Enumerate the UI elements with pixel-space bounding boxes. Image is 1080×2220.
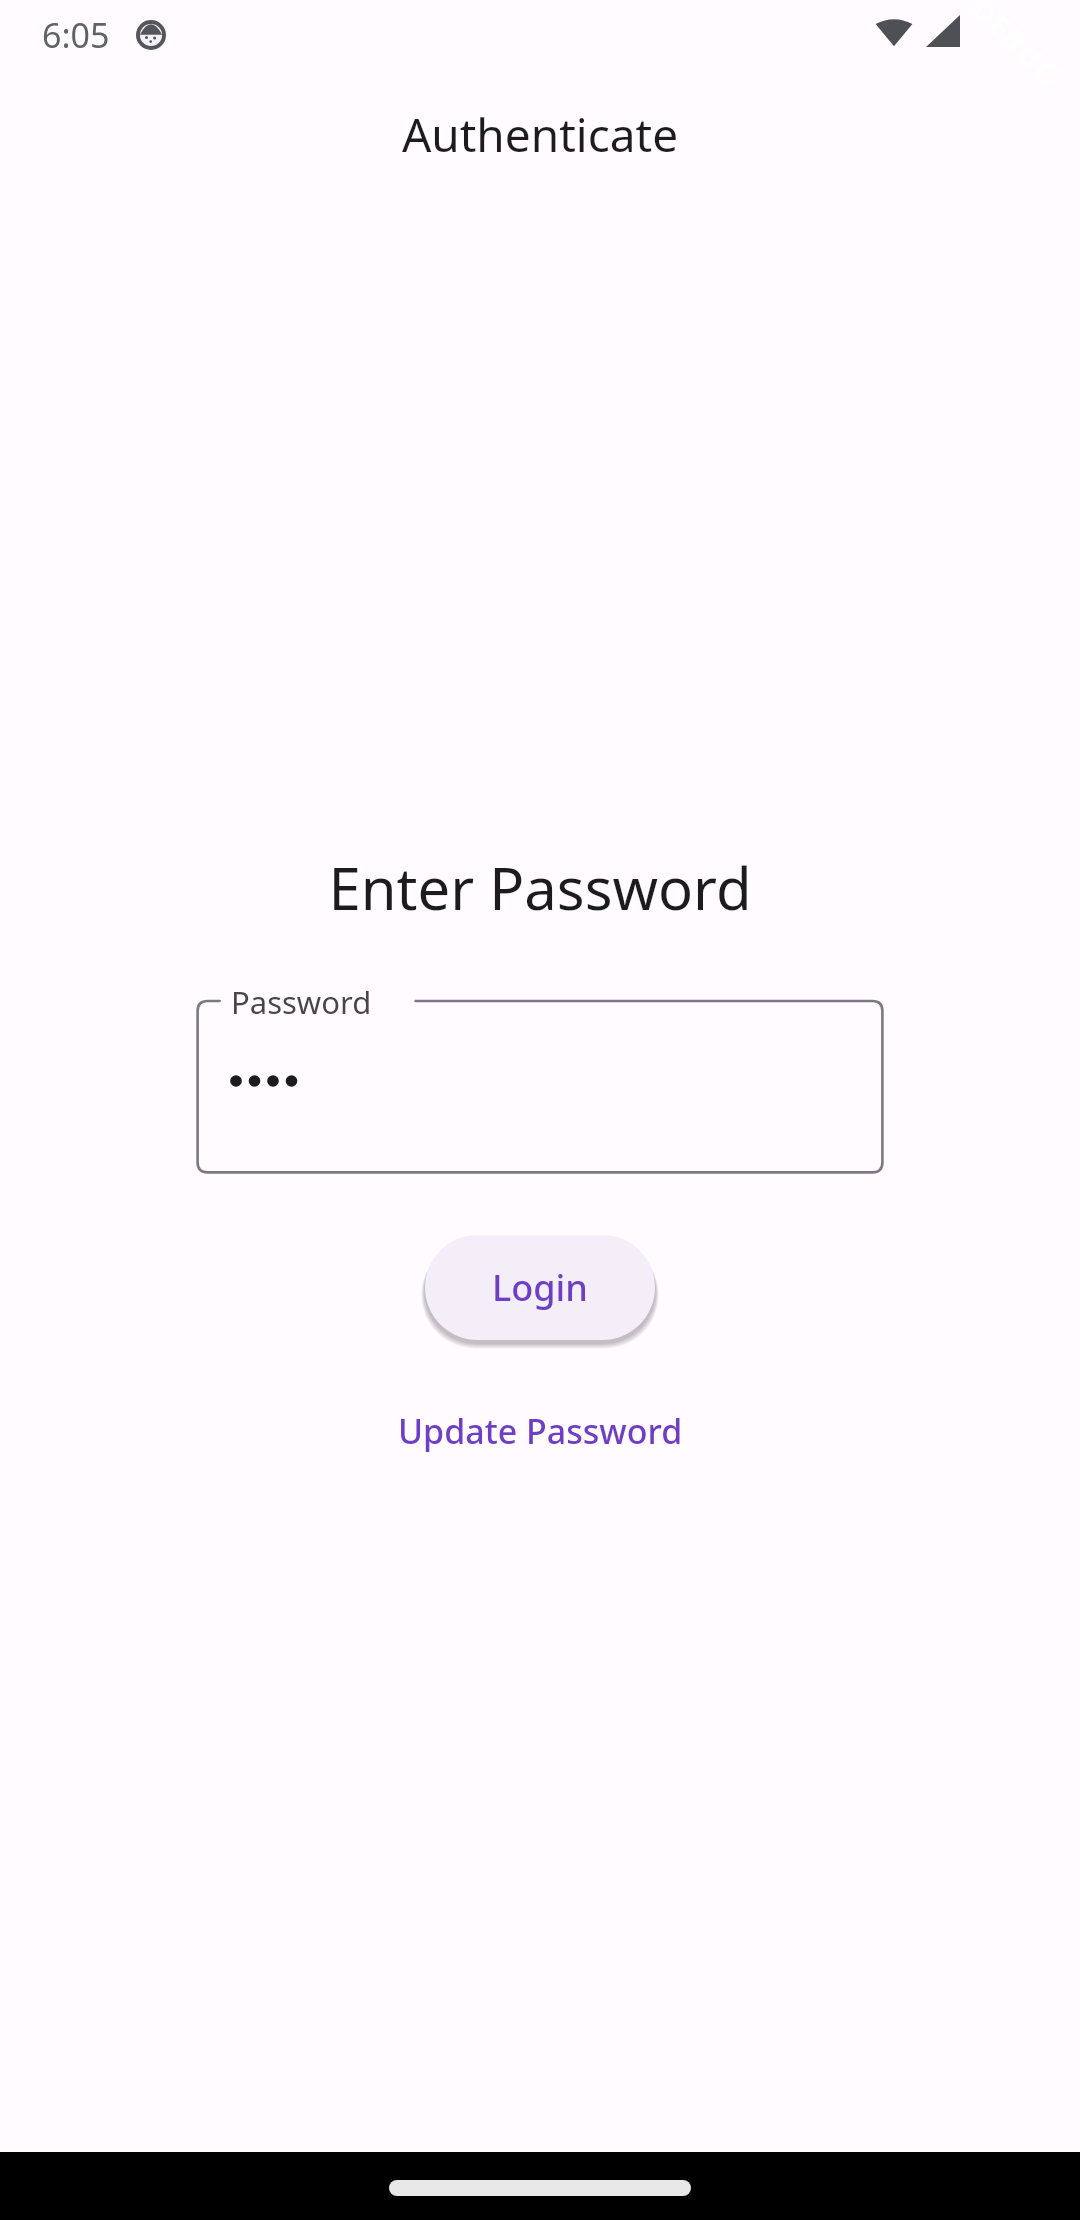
staticText: Login — [492, 1263, 588, 1312]
staticText: Authenticate — [0, 103, 1080, 166]
button[interactable]: Password — [196, 985, 884, 1174]
button[interactable]: Home — [389, 2180, 691, 2196]
staticText: Enter Password — [0, 848, 1080, 927]
staticText: 6:05 — [42, 12, 110, 58]
button[interactable]: Login — [425, 1235, 655, 1340]
staticText: Update Password — [398, 1408, 683, 1454]
button[interactable]: Update Password — [380, 1398, 701, 1464]
staticText: Password — [231, 981, 372, 1023]
